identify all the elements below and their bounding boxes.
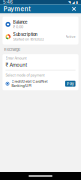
staticText: Payment — [3, 5, 30, 13]
staticText: Credit/Debit Card/Net Banking/UPI — [11, 79, 47, 88]
staticText: 5:46 — [3, 0, 13, 5]
button[interactable]: Pay — [65, 81, 75, 87]
staticText: Select mode of payment — [5, 73, 44, 77]
staticText: Active — [65, 35, 75, 39]
staticText: Pay — [67, 81, 74, 86]
staticText: ₹ 0.00 — [13, 25, 23, 29]
staticText: Balance — [13, 20, 27, 25]
staticText: ◥ ◢ ▮ — [68, 0, 78, 4]
button[interactable]: Close — [70, 4, 78, 13]
staticText: ₹ Amount — [5, 62, 27, 68]
staticText: Recharge — [4, 47, 20, 52]
button[interactable]: Credit/Debit Card/Net Banking/UPI — [5, 79, 47, 88]
staticText: Subscription — [13, 32, 37, 37]
staticText: Enter Amount — [5, 56, 26, 60]
staticText: Started on 18/1/2022 — [13, 37, 44, 41]
button[interactable]: Subscription — [2, 31, 78, 43]
button[interactable]: Balance — [2, 18, 78, 31]
